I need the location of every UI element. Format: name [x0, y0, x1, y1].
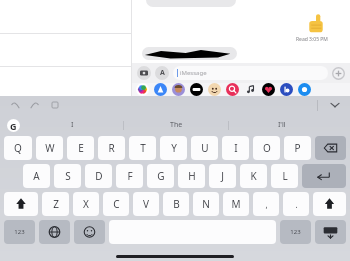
staticText: W	[45, 141, 55, 155]
staticText: X	[83, 197, 89, 211]
button[interactable]: W	[36, 136, 63, 160]
staticText: A	[33, 169, 40, 183]
button[interactable]: Return	[302, 164, 346, 188]
button[interactable]: Google	[7, 119, 20, 132]
button[interactable]: Emoji	[74, 220, 105, 244]
staticText: N	[202, 197, 210, 211]
button[interactable]: L	[271, 164, 298, 188]
staticText: A	[160, 68, 165, 78]
button[interactable]: Camera	[137, 66, 151, 80]
button[interactable]: Backspace	[315, 136, 346, 160]
staticText: Q	[14, 141, 22, 155]
staticText: K	[250, 169, 257, 183]
staticText: J	[221, 169, 224, 183]
button[interactable]: J	[209, 164, 236, 188]
staticText: .	[295, 199, 298, 210]
button[interactable]: H	[178, 164, 205, 188]
button[interactable]: Memoji	[172, 83, 185, 96]
button[interactable]: More	[298, 83, 311, 96]
button[interactable]: Photos	[136, 83, 149, 96]
button[interactable]: Y	[160, 136, 187, 160]
staticText: G	[157, 169, 165, 183]
staticText: G	[10, 120, 17, 132]
button[interactable]: 123	[4, 220, 35, 244]
button[interactable]: Send	[332, 67, 345, 80]
button[interactable]: App Store	[154, 83, 167, 96]
button[interactable]: I'll	[229, 114, 334, 136]
staticText: Y	[171, 141, 177, 155]
button[interactable]: Redo	[28, 98, 42, 112]
button[interactable]: K	[240, 164, 267, 188]
staticText: Z	[53, 197, 59, 211]
button[interactable]: Apple Pay	[190, 83, 203, 96]
button[interactable]: N	[193, 192, 219, 216]
staticText: F	[127, 169, 133, 183]
button[interactable]: iMessage	[173, 66, 328, 80]
staticText: M	[231, 197, 241, 211]
button[interactable]: S	[54, 164, 81, 188]
button[interactable]: I	[222, 136, 249, 160]
button[interactable]: I	[20, 114, 124, 136]
button[interactable]: Shift	[4, 192, 38, 216]
button[interactable]: D	[85, 164, 112, 188]
button[interactable]: E	[67, 136, 94, 160]
staticText: C	[113, 197, 120, 211]
button[interactable]: Music search	[226, 83, 239, 96]
button[interactable]: Change keyboard	[39, 220, 70, 244]
staticText: The	[170, 120, 183, 130]
button[interactable]: G	[147, 164, 174, 188]
button[interactable]: P	[284, 136, 311, 160]
button[interactable]: 123	[280, 220, 311, 244]
staticText: 123	[290, 228, 301, 236]
button[interactable]: A	[23, 164, 50, 188]
button[interactable]: Hide keyboard	[328, 98, 342, 112]
button[interactable]: F	[116, 164, 143, 188]
button[interactable]: B	[163, 192, 189, 216]
button[interactable]: Q	[4, 136, 32, 160]
button[interactable]: Animoji	[208, 83, 221, 96]
button[interactable]: U	[191, 136, 218, 160]
button[interactable]: .	[283, 192, 309, 216]
staticText: I'll	[278, 120, 286, 130]
button[interactable]: Dismiss keyboard	[315, 220, 346, 244]
staticText: V	[143, 197, 149, 211]
staticText: S	[65, 169, 71, 183]
staticText: O	[263, 141, 271, 155]
staticText: E	[78, 141, 84, 155]
staticText: T	[140, 141, 146, 155]
staticText: I	[71, 120, 74, 130]
button[interactable]: V	[133, 192, 159, 216]
button[interactable]: Bing	[280, 83, 293, 96]
staticText: iMessage	[180, 69, 207, 77]
button[interactable]: App Store	[155, 66, 169, 80]
button[interactable]: Z	[42, 192, 69, 216]
staticText: 123	[14, 228, 25, 236]
button[interactable]: C	[103, 192, 129, 216]
staticText: R	[108, 141, 115, 155]
button[interactable]: O	[253, 136, 280, 160]
button[interactable]: Music	[244, 83, 257, 96]
button[interactable]: R	[98, 136, 125, 160]
staticText: B	[173, 197, 180, 211]
button[interactable]: Undo	[8, 98, 22, 112]
staticText: D	[95, 169, 103, 183]
staticText: Read 3:05 PM	[296, 36, 328, 43]
button[interactable]: Health	[262, 83, 275, 96]
staticText: L	[282, 169, 288, 183]
button[interactable]: The	[124, 114, 229, 136]
button[interactable]: X	[73, 192, 99, 216]
button[interactable]: ,	[253, 192, 279, 216]
staticText: ,	[265, 199, 268, 210]
button[interactable]: Paste	[48, 98, 62, 112]
staticText: H	[188, 169, 196, 183]
staticText: U	[201, 141, 209, 155]
button[interactable]: T	[129, 136, 156, 160]
staticText: I	[234, 141, 238, 155]
button[interactable]: Shift	[313, 192, 346, 216]
button[interactable]: M	[223, 192, 249, 216]
staticText: P	[294, 141, 301, 155]
